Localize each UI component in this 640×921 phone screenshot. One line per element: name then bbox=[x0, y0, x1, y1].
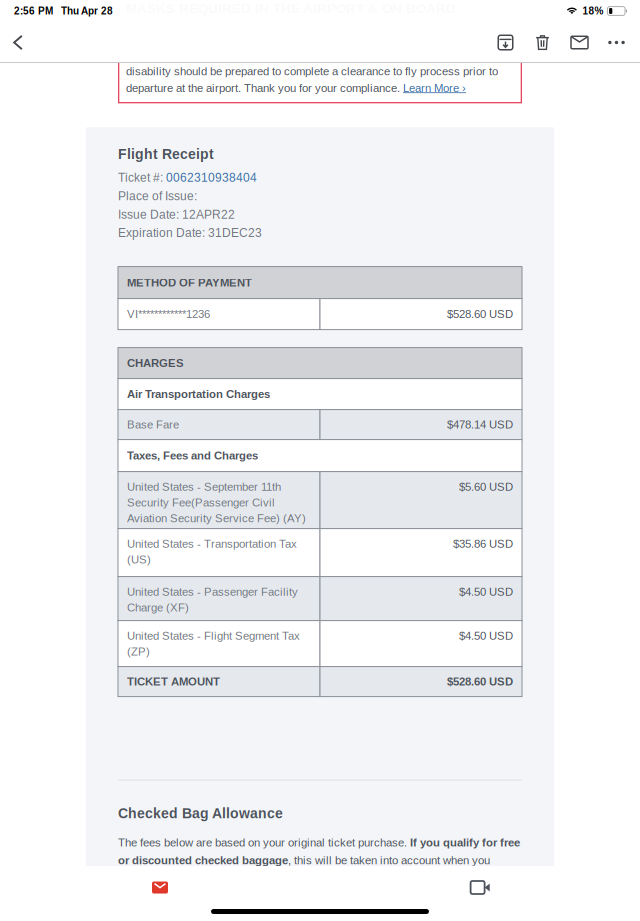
staticText: 0062310938404 bbox=[166, 171, 257, 184]
staticText: 2:56 PM bbox=[14, 5, 53, 17]
staticText: Issue Date: 12APR22 bbox=[118, 208, 235, 221]
staticText: United States - September 11th bbox=[127, 481, 281, 493]
staticText: Place of Issue: bbox=[118, 189, 197, 203]
staticText: Expiration Date: 31DEC23 bbox=[118, 226, 262, 240]
button[interactable]: Learn More › bbox=[403, 82, 466, 94]
staticText: Base Fare bbox=[127, 418, 179, 431]
staticText: $478.14 USD bbox=[447, 418, 513, 431]
staticText: METHOD OF PAYMENT bbox=[127, 276, 252, 289]
staticText: Charge (XF) bbox=[127, 601, 189, 614]
staticText: Learn More › bbox=[403, 82, 466, 94]
staticText: (US) bbox=[127, 553, 151, 566]
staticText: Taxes, Fees and Charges bbox=[127, 449, 258, 462]
staticText: or discounted checked baggage bbox=[118, 854, 288, 867]
staticText: $528.60 USD bbox=[447, 675, 513, 688]
staticText: , this will be taken into account when y… bbox=[288, 854, 490, 867]
staticText: VI************1236 bbox=[127, 308, 210, 320]
button[interactable]: 0062310938404 bbox=[166, 171, 257, 184]
staticText: Thu Apr 28 bbox=[61, 5, 113, 17]
staticText: benefit. Customers requiring exemptions … bbox=[126, 73, 504, 86]
staticText: Flight Receipt bbox=[118, 146, 214, 162]
staticText: The fees below are based on your origina… bbox=[118, 836, 410, 849]
staticText: United States - Transportation Tax bbox=[127, 538, 297, 550]
staticText: CHARGES bbox=[127, 357, 184, 369]
button[interactable]: More bbox=[598, 22, 635, 62]
staticText: Aviation Security Service Fee) (AY) bbox=[127, 512, 306, 525]
button[interactable]: Delete bbox=[524, 22, 561, 62]
staticText: Air Transportation Charges bbox=[127, 388, 270, 400]
staticText: departure at the airport. Thank you for … bbox=[126, 82, 403, 94]
button[interactable]: FaceTime bbox=[456, 873, 504, 901]
staticText: (ZP) bbox=[127, 645, 150, 658]
staticText: $4.50 USD bbox=[459, 630, 513, 642]
staticText: $35.86 USD bbox=[453, 538, 513, 550]
staticText: 18% bbox=[582, 5, 603, 17]
staticText: United States - Passenger Facility bbox=[127, 586, 298, 598]
staticText: $5.60 USD bbox=[459, 481, 513, 493]
staticText: If you qualify for free bbox=[410, 836, 520, 849]
button[interactable]: Mail bbox=[136, 873, 184, 901]
staticText: disability should be prepared to complet… bbox=[126, 65, 498, 78]
staticText: Checked Bag Allowance bbox=[118, 806, 283, 821]
staticText: Security Fee(Passenger Civil bbox=[127, 496, 275, 509]
staticText: Ticket #: bbox=[118, 171, 166, 184]
staticText: $528.60 USD bbox=[447, 308, 513, 320]
staticText: TICKET AMOUNT bbox=[127, 675, 220, 688]
button[interactable]: Mark as unread bbox=[561, 22, 598, 62]
staticText: United States - Flight Segment Tax bbox=[127, 630, 300, 642]
staticText: masks using travelling and Customers, un… bbox=[126, 44, 486, 69]
button[interactable]: Archive bbox=[487, 22, 524, 62]
staticText: $4.50 USD bbox=[459, 586, 513, 598]
button[interactable]: Back bbox=[3, 22, 33, 62]
